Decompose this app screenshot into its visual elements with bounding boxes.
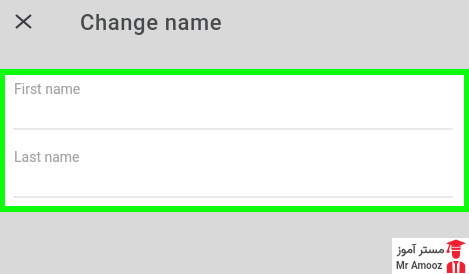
button[interactable]: Close	[9, 7, 38, 36]
staticText: Last name	[14, 149, 80, 165]
button[interactable]: Last name	[8, 143, 458, 203]
staticText: Change name	[80, 10, 223, 36]
staticText: First name	[14, 81, 81, 97]
button[interactable]: First name	[8, 75, 458, 135]
staticText: مستر آموز	[397, 241, 445, 260]
staticText: Mr Amooz	[396, 260, 443, 272]
